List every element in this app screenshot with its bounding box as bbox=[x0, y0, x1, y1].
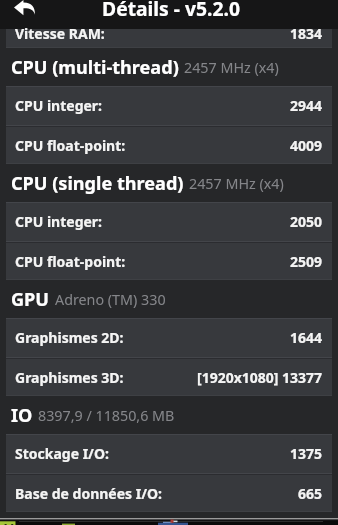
staticText: 2944 bbox=[290, 96, 323, 115]
staticText: GPU bbox=[11, 287, 50, 312]
button[interactable]: CPU integer: bbox=[6, 86, 332, 125]
staticText: 1834 bbox=[290, 24, 323, 43]
button[interactable]: Base de données I/O: bbox=[6, 475, 332, 512]
button[interactable]: CPU float-point: bbox=[6, 243, 332, 280]
button[interactable]: Back bbox=[0, 0, 44, 29]
staticText: 2457 MHz (x4) bbox=[189, 174, 284, 193]
staticText: CPU integer: bbox=[15, 96, 103, 115]
staticText: Graphismes 2D: bbox=[15, 328, 124, 347]
staticText: CPU integer: bbox=[15, 212, 103, 231]
staticText: CPU (single thread) bbox=[11, 171, 184, 196]
staticText: [1920x1080] 13377 bbox=[197, 368, 323, 387]
staticText: 665 bbox=[298, 484, 323, 503]
staticText: Détails - v5.2.0 bbox=[102, 0, 240, 21]
staticText: 2509 bbox=[290, 252, 323, 271]
staticText: CPU float-point: bbox=[15, 136, 126, 155]
button[interactable]: Vitesse RAM: bbox=[6, 29, 332, 48]
staticText: 4009 bbox=[290, 136, 323, 155]
button[interactable]: CPU float-point: bbox=[6, 127, 332, 164]
staticText: 2050 bbox=[290, 212, 323, 231]
staticText: Base de données I/O: bbox=[15, 484, 163, 503]
staticText: Graphismes 3D: bbox=[15, 368, 124, 387]
button[interactable]: CPU integer: bbox=[6, 202, 332, 241]
button[interactable]: Stockage I/O: bbox=[6, 434, 332, 473]
staticText: 8397,9 / 11850,6 MB bbox=[38, 406, 175, 425]
staticText: CPU (multi-thread) bbox=[11, 55, 179, 80]
button[interactable]: Graphismes 3D: bbox=[6, 359, 332, 396]
staticText: IO bbox=[11, 403, 33, 428]
staticText: Stockage I/O: bbox=[15, 444, 109, 463]
staticText: CPU float-point: bbox=[15, 252, 126, 271]
button[interactable]: Graphismes 2D: bbox=[6, 318, 332, 357]
staticText: 1644 bbox=[290, 328, 323, 347]
button[interactable] bbox=[0, 518, 338, 525]
staticText: Vitesse RAM: bbox=[15, 24, 105, 43]
staticText: 1375 bbox=[290, 444, 323, 463]
staticText: Adreno (TM) 330 bbox=[55, 290, 166, 309]
staticText: 2457 MHz (x4) bbox=[184, 58, 279, 77]
